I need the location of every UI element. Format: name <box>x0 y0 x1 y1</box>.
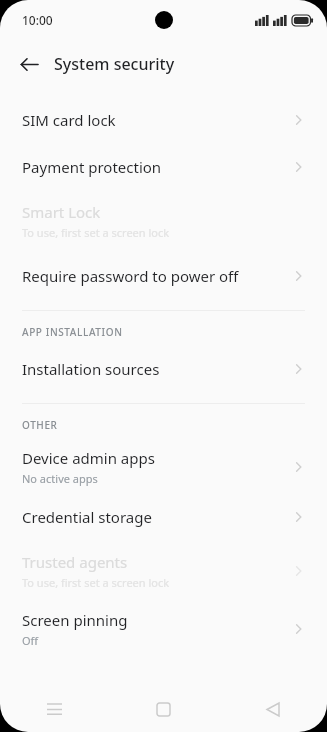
staticText: Device admin apps <box>22 448 155 468</box>
button[interactable]: Payment protection <box>0 143 327 190</box>
staticText: Trusted agents <box>22 552 128 572</box>
staticText: Installation sources <box>22 359 160 379</box>
button[interactable]: Home <box>109 686 218 732</box>
staticText: Credential storage <box>22 507 152 527</box>
staticText: Screen pinning <box>22 610 128 630</box>
button[interactable]: SIM card lock <box>0 96 327 143</box>
staticText: APP INSTALLATION <box>22 325 123 339</box>
button[interactable]: Device admin apps <box>0 440 327 494</box>
button[interactable]: Trusted agents <box>0 540 327 602</box>
button[interactable]: Credential storage <box>0 494 327 540</box>
staticText: Require password to power off <box>22 266 239 286</box>
staticText: SIM card lock <box>22 110 116 130</box>
button[interactable]: Smart Lock <box>0 190 327 252</box>
button[interactable]: Installation sources <box>0 349 327 389</box>
button[interactable]: Back <box>10 45 48 83</box>
staticText: 10:00 <box>22 12 53 28</box>
staticText: Off <box>22 633 39 648</box>
staticText: To use, first set a screen lock <box>22 225 170 240</box>
button[interactable]: Require password to power off <box>0 252 327 299</box>
staticText: Smart Lock <box>22 202 101 222</box>
button[interactable]: Back <box>218 686 327 732</box>
staticText: System security <box>54 53 175 75</box>
staticText: No active apps <box>22 471 98 486</box>
staticText: To use, first set a screen lock <box>22 575 170 590</box>
staticText: OTHER <box>22 418 58 432</box>
button[interactable]: Recent apps <box>0 686 109 732</box>
button[interactable]: Screen pinning <box>0 602 327 656</box>
staticText: Payment protection <box>22 157 162 177</box>
